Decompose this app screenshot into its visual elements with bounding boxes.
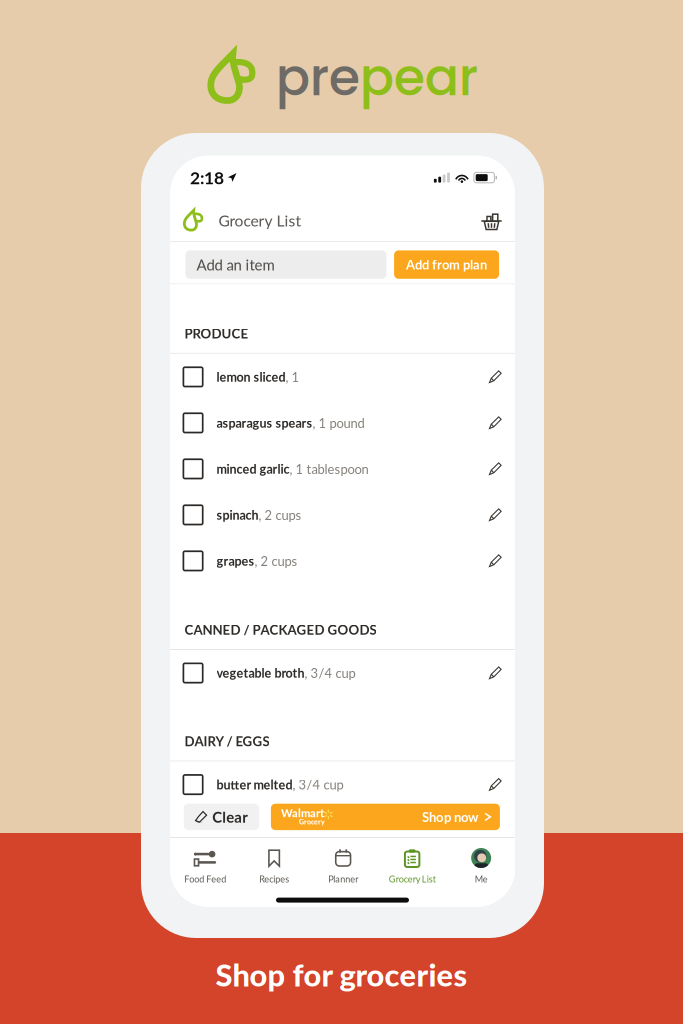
staticText: Grocery — [299, 818, 325, 826]
staticText: PRODUCE — [184, 326, 248, 341]
button[interactable]: lemon sliced — [170, 354, 515, 400]
staticText: asparagus spears — [216, 415, 312, 430]
staticText: CANNED / PACKAGED GOODS — [184, 622, 376, 637]
staticText: Add from plan — [406, 257, 487, 272]
button[interactable]: spinach — [170, 492, 515, 538]
button[interactable]: Clear — [184, 804, 259, 830]
button[interactable]: Add an item — [185, 250, 386, 279]
staticText: DAIRY / EGGS — [184, 733, 269, 749]
staticText: minced garlic — [216, 461, 289, 476]
staticText: lemon sliced — [216, 369, 285, 384]
button[interactable]: Planner — [309, 838, 378, 894]
button[interactable]: grapes — [170, 538, 515, 584]
staticText: Food Feed — [184, 873, 226, 884]
staticText: Recipes — [259, 873, 289, 884]
button[interactable]: Grocery List — [378, 838, 447, 894]
staticText: Planner — [328, 873, 358, 884]
staticText: butter melted — [216, 777, 292, 792]
staticText: Shop for groceries — [215, 956, 467, 993]
staticText: , 1 pound — [312, 415, 364, 431]
button[interactable]: Recipes — [240, 838, 309, 894]
button[interactable]: Food Feed — [171, 838, 240, 894]
staticText: pre — [276, 42, 360, 113]
staticText: , 3/4 cup — [304, 665, 355, 681]
staticText: grapes — [216, 553, 254, 568]
staticText: vegetable broth — [216, 665, 304, 680]
staticText: pear — [360, 42, 478, 113]
staticText: Shop now — [422, 809, 478, 825]
button[interactable]: Clear grocery basket — [475, 204, 508, 237]
staticText: Clear — [212, 808, 248, 826]
button[interactable]: butter melted — [170, 762, 515, 808]
staticText: Grocery List — [389, 873, 436, 884]
staticText: , 2 cups — [258, 507, 301, 523]
button[interactable]: asparagus spears — [170, 400, 515, 446]
button[interactable]: minced garlic — [170, 446, 515, 492]
staticText: , 1 tablespoon — [289, 461, 368, 477]
staticText: , 2 cups — [254, 553, 297, 569]
button[interactable]: Walmart — [271, 804, 500, 830]
button[interactable]: Me — [447, 838, 516, 894]
staticText: Grocery List — [219, 211, 302, 230]
staticText: Walmart — [281, 806, 324, 820]
staticText: 2:18 — [190, 167, 224, 188]
staticText: , 3/4 cup — [292, 777, 343, 792]
button[interactable]: Add from plan — [394, 250, 499, 279]
button[interactable]: vegetable broth — [170, 650, 515, 696]
staticText: spinach — [216, 507, 258, 522]
staticText: Add an item — [196, 256, 274, 273]
staticText: Me — [475, 873, 488, 884]
staticText: , 1 — [285, 369, 299, 385]
